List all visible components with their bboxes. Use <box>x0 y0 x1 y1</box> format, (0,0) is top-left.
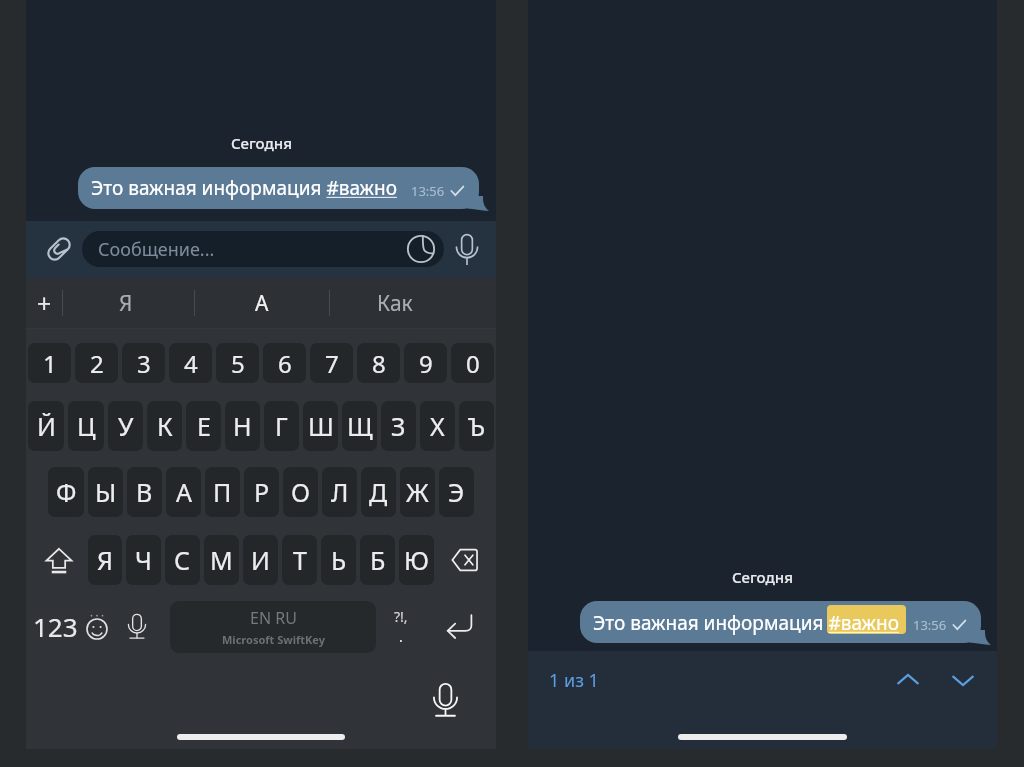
staticText: О <box>291 475 311 509</box>
button[interactable]: Д <box>361 467 396 517</box>
button[interactable]: 9 <box>404 343 447 383</box>
button[interactable]: Б <box>360 535 395 585</box>
staticText: А <box>176 475 192 509</box>
staticText: 2 <box>90 347 104 380</box>
staticText: Ц <box>77 409 96 443</box>
button[interactable]: Я <box>63 277 189 329</box>
staticText: Б <box>370 543 386 577</box>
button[interactable]: ?!, <box>378 602 424 650</box>
button[interactable]: О <box>283 467 318 517</box>
button[interactable]: Ю <box>399 535 434 585</box>
button[interactable]: Ы <box>88 467 123 517</box>
button[interactable]: Е <box>186 401 221 451</box>
staticText: . <box>399 627 403 646</box>
button[interactable]: В <box>127 467 162 517</box>
staticText: Я <box>97 543 113 577</box>
staticText: 123 <box>33 609 78 644</box>
staticText: Это важная информация #важно <box>593 610 899 636</box>
staticText: Л <box>331 475 349 509</box>
staticText: 6 <box>278 347 292 380</box>
button[interactable]: П <box>205 467 240 517</box>
staticText: Сообщение... <box>98 237 215 262</box>
staticText: Microsoft SwiftKey <box>222 632 325 647</box>
staticText: Е <box>197 409 211 443</box>
button[interactable]: Next result <box>942 659 984 701</box>
button[interactable]: Backspace <box>437 535 493 585</box>
button[interactable]: И <box>243 535 278 585</box>
staticText: Ъ <box>468 409 486 443</box>
button[interactable]: Ж <box>400 467 435 517</box>
button[interactable]: З <box>381 401 416 451</box>
button[interactable]: М <box>204 535 239 585</box>
button[interactable]: Р <box>244 467 279 517</box>
button[interactable]: Enter <box>434 602 486 650</box>
staticText: Это важная информация #важно <box>91 175 397 201</box>
staticText: 8 <box>372 347 386 380</box>
button[interactable]: Ц <box>68 401 104 451</box>
button[interactable]: К <box>147 401 182 451</box>
staticText: 13:56 <box>913 616 947 634</box>
button[interactable]: Э <box>439 467 474 517</box>
staticText: Ы <box>95 475 117 509</box>
button[interactable]: Ф <box>48 467 84 517</box>
staticText: Я <box>119 289 133 318</box>
button[interactable]: 4 <box>169 343 212 383</box>
button[interactable]: 3 <box>122 343 165 383</box>
staticText: 0 <box>466 347 480 380</box>
button[interactable]: 0 <box>451 343 494 383</box>
button[interactable]: Л <box>322 467 357 517</box>
button[interactable]: Ш <box>303 401 338 451</box>
button[interactable]: Voice typing <box>115 602 159 650</box>
button[interactable]: Я <box>88 535 122 585</box>
button[interactable]: 1 <box>28 343 71 383</box>
staticText: Щ <box>347 409 373 443</box>
button[interactable]: Ь <box>321 535 356 585</box>
button[interactable]: Voice input <box>423 677 467 721</box>
button[interactable]: Add <box>26 277 63 329</box>
button[interactable]: Сообщение... <box>82 231 444 267</box>
button[interactable]: EN RU <box>170 601 376 653</box>
button[interactable]: Ъ <box>459 401 494 451</box>
button[interactable]: Voice message <box>448 230 486 268</box>
button[interactable]: Emoji <box>75 602 119 650</box>
button[interactable]: Attach <box>38 228 80 270</box>
button[interactable]: А <box>195 277 329 329</box>
staticText: Д <box>369 475 388 509</box>
staticText: Ю <box>404 543 429 577</box>
button[interactable]: 2 <box>75 343 118 383</box>
staticText: ?!, <box>394 607 408 626</box>
staticText: 9 <box>419 347 433 380</box>
staticText: В <box>136 475 153 509</box>
staticText: С <box>174 543 191 577</box>
button[interactable]: Н <box>225 401 260 451</box>
button[interactable]: Как <box>330 277 460 329</box>
staticText: 13:56 <box>411 182 445 200</box>
button[interactable]: 8 <box>357 343 400 383</box>
button[interactable]: Ч <box>126 535 161 585</box>
button[interactable]: А <box>166 467 201 517</box>
staticText: И <box>251 543 270 577</box>
staticText: П <box>213 475 232 509</box>
button[interactable]: Т <box>282 535 317 585</box>
staticText: Как <box>377 289 413 318</box>
staticText: Сегодня <box>732 567 793 587</box>
staticText: Сегодня <box>231 133 292 153</box>
staticText: 4 <box>184 347 198 380</box>
staticText: Н <box>233 409 252 443</box>
button[interactable]: У <box>108 401 143 451</box>
button[interactable]: 5 <box>216 343 259 383</box>
button[interactable]: Previous result <box>887 659 929 701</box>
button[interactable]: Й <box>28 401 64 451</box>
button[interactable]: 1 из 1 <box>549 668 599 693</box>
button[interactable]: С <box>165 535 200 585</box>
staticText: EN RU <box>250 607 297 629</box>
staticText: А <box>255 289 269 318</box>
staticText: Т <box>293 543 307 577</box>
button[interactable]: Х <box>420 401 455 451</box>
button[interactable]: 123 <box>29 602 81 650</box>
button[interactable]: 6 <box>263 343 306 383</box>
button[interactable]: Shift <box>31 535 87 585</box>
button[interactable]: Щ <box>342 401 377 451</box>
button[interactable]: Г <box>264 401 299 451</box>
button[interactable]: 7 <box>310 343 353 383</box>
